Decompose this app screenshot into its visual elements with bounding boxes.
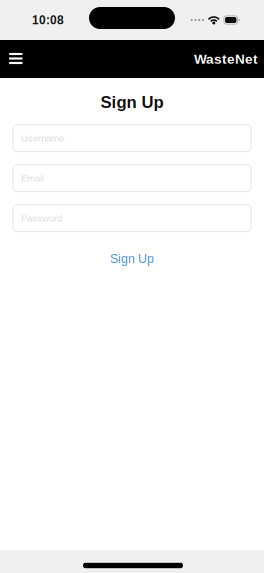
staticText: Username: [21, 133, 64, 143]
staticText: Email: [21, 173, 44, 183]
button[interactable]: Menu: [0, 40, 32, 78]
button[interactable]: Username: [13, 125, 251, 152]
button[interactable]: Password: [13, 205, 251, 232]
staticText: Password: [21, 213, 62, 223]
staticText: Sign Up: [110, 252, 154, 266]
staticText: 10:08: [32, 13, 64, 27]
button[interactable]: Sign Up: [13, 250, 251, 268]
button[interactable]: Email: [13, 165, 251, 192]
button[interactable]: WasteNet: [194, 40, 264, 78]
staticText: Sign Up: [100, 93, 163, 112]
staticText: WasteNet: [194, 51, 258, 67]
